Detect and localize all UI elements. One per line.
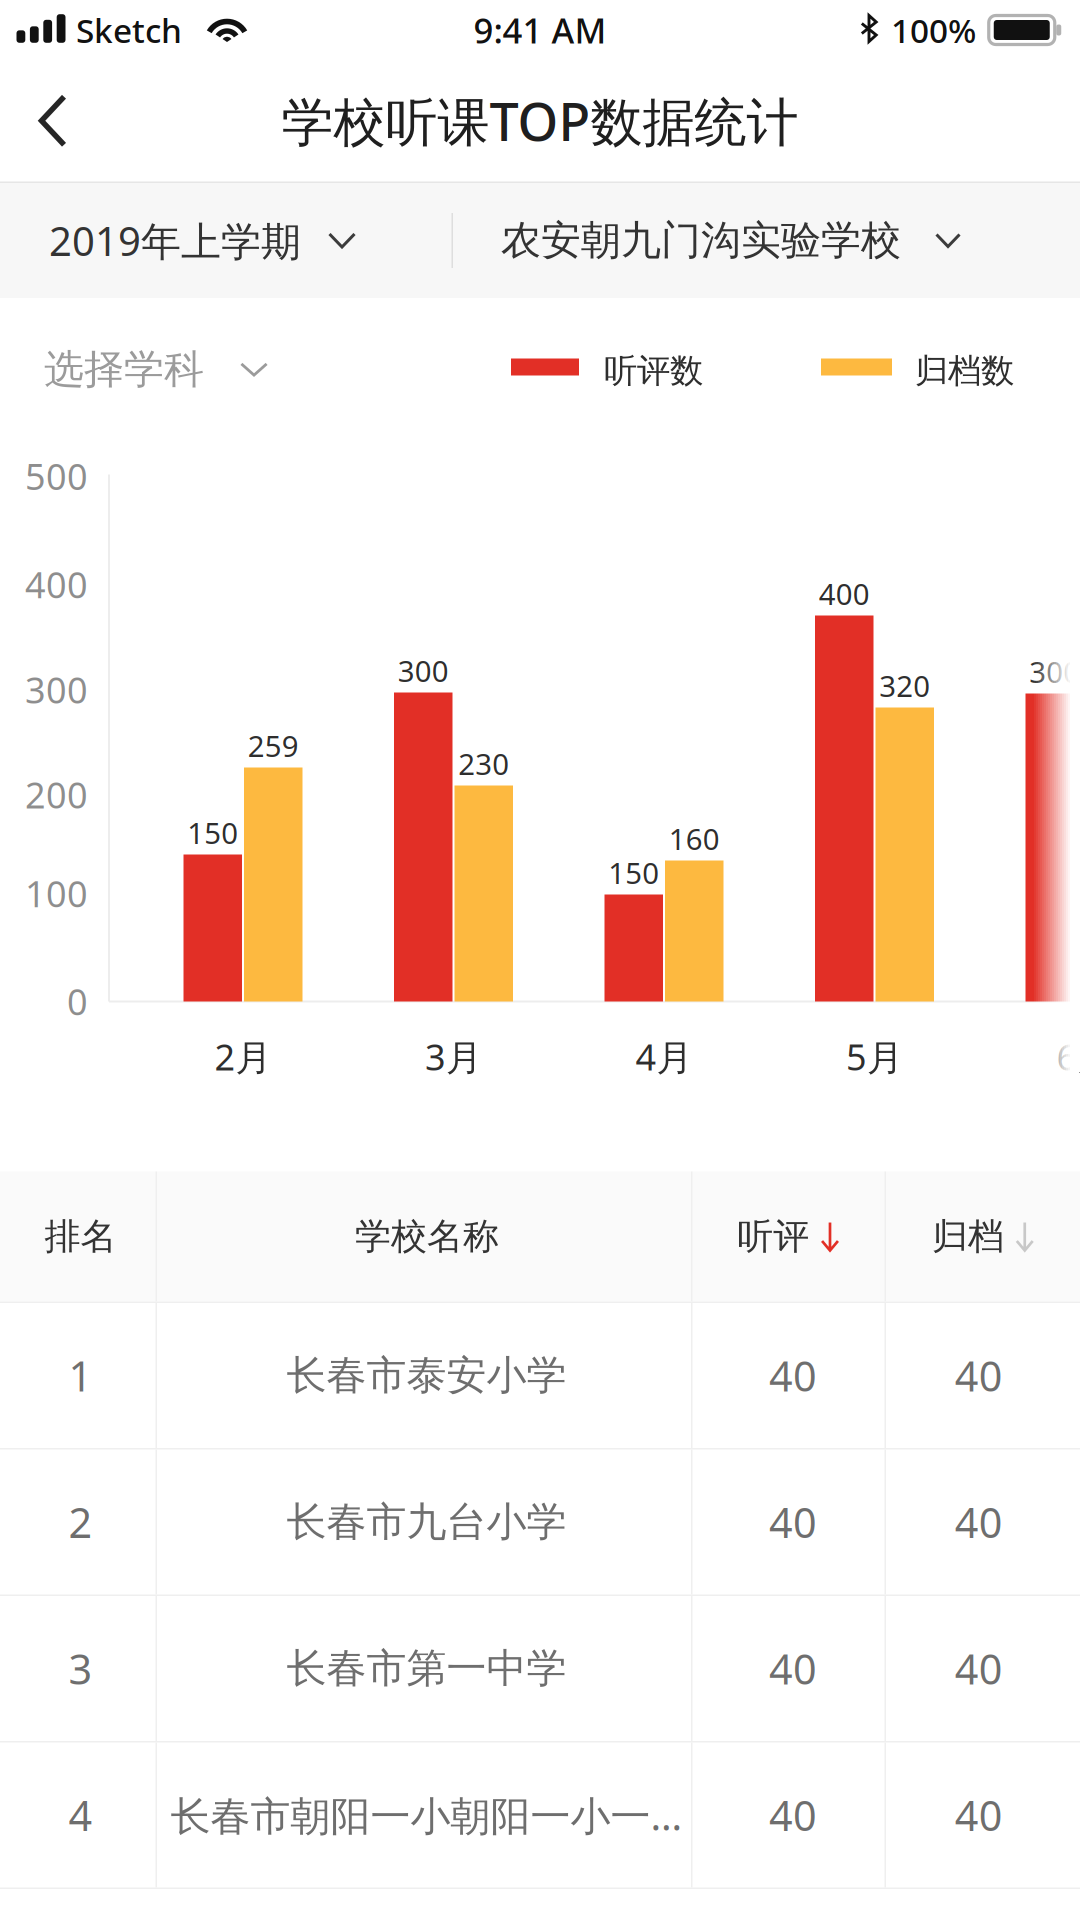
staticText: 学校名称: [355, 1214, 499, 1259]
button[interactable]: 听评: [692, 1171, 884, 1301]
staticText: 40: [955, 1348, 1003, 1403]
staticText: 排名: [44, 1214, 116, 1259]
staticText: 40: [769, 1495, 817, 1549]
staticText: 长春市第一中学: [286, 1644, 566, 1693]
staticText: 40: [769, 1348, 817, 1403]
staticText: 学校听课TOP数据统计: [281, 86, 798, 155]
staticText: 3月: [425, 1033, 482, 1080]
staticText: 400: [819, 574, 870, 613]
staticText: 40: [769, 1641, 817, 1696]
staticText: 长春市九台小学: [286, 1497, 566, 1546]
staticText: 1: [68, 1348, 92, 1403]
staticText: 40: [955, 1495, 1003, 1549]
staticText: 9:41 AM: [473, 7, 606, 53]
button[interactable]: 归档: [886, 1171, 1080, 1301]
button[interactable]: Back: [0, 60, 106, 181]
staticText: 160: [669, 819, 720, 858]
staticText: 2月: [214, 1033, 271, 1080]
button[interactable]: 农安朝九门沟实验学校: [453, 183, 1080, 298]
staticText: 4月: [635, 1033, 692, 1080]
button[interactable]: 2: [0, 1449, 1080, 1594]
button[interactable]: 3: [0, 1596, 1080, 1741]
staticText: 听评数: [604, 350, 703, 391]
staticText: 6月: [1056, 1033, 1080, 1080]
button[interactable]: 选择学科: [0, 298, 430, 441]
staticText: 长春市朝阳一小朝阳一小一…: [170, 1788, 682, 1841]
button[interactable]: 1: [0, 1303, 1080, 1448]
staticText: 农安朝九门沟实验学校: [501, 216, 901, 265]
staticText: 150: [187, 813, 238, 852]
staticText: 200: [25, 771, 88, 818]
staticText: 选择学科: [44, 345, 204, 394]
staticText: 40: [955, 1641, 1003, 1696]
staticText: 150: [608, 853, 659, 892]
staticText: 40: [769, 1788, 817, 1842]
staticText: 100: [25, 869, 88, 917]
staticText: 2: [68, 1495, 92, 1549]
staticText: 320: [879, 666, 930, 705]
staticText: 300: [398, 651, 449, 690]
staticText: 40: [955, 1788, 1003, 1842]
staticText: 300: [1029, 652, 1080, 691]
staticText: 300: [25, 666, 88, 713]
staticText: Sketch: [76, 8, 182, 52]
staticText: 0: [67, 977, 88, 1025]
staticText: 100%: [891, 8, 976, 52]
button[interactable]: 2019年上学期: [0, 183, 451, 298]
staticText: 听评: [737, 1214, 809, 1259]
staticText: 归档数: [915, 350, 1014, 391]
staticText: 500: [25, 452, 88, 500]
staticText: 长春市泰安小学: [286, 1351, 566, 1400]
staticText: 4: [68, 1788, 92, 1842]
staticText: 5月: [846, 1033, 903, 1080]
staticText: 归档: [932, 1214, 1004, 1259]
staticText: 230: [458, 744, 509, 783]
staticText: 2019年上学期: [49, 214, 301, 267]
staticText: 400: [25, 560, 88, 608]
staticText: 259: [248, 726, 299, 765]
button[interactable]: 4: [0, 1742, 1080, 1887]
staticText: 3: [68, 1641, 92, 1696]
